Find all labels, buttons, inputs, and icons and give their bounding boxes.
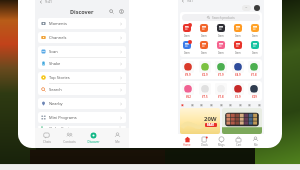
- staticText: Deals: [201, 143, 208, 147]
- button[interactable]: Top Stories: [38, 72, 126, 83]
- button[interactable]: ···: [242, 5, 251, 11]
- staticText: ▣: [181, 103, 184, 106]
- staticText: 9:41: [45, 0, 52, 4]
- button[interactable]: Moments: [38, 18, 126, 29]
- staticText: Item: [235, 51, 241, 55]
- button[interactable]: Discover: [81, 128, 105, 148]
- button[interactable]: Cart: [230, 134, 247, 148]
- button[interactable]: Item: [216, 23, 226, 38]
- staticText: ¥1.8: [251, 73, 257, 77]
- button[interactable]: Item: [216, 40, 226, 55]
- button[interactable]: ¥3.9: [232, 83, 244, 99]
- button[interactable]: Order Center: [38, 126, 126, 128]
- staticText: 20W: [204, 115, 217, 123]
- button[interactable]: [222, 108, 262, 134]
- staticText: Discover: [87, 140, 100, 144]
- button[interactable]: Search: [38, 84, 126, 95]
- staticText: ▣: [210, 103, 213, 106]
- staticText: ¥1.8: [218, 95, 224, 99]
- staticText: Cart: [236, 143, 242, 147]
- staticText: ▣: [229, 103, 232, 106]
- staticText: ▣: [239, 103, 242, 106]
- staticText: Item: [184, 34, 190, 38]
- button[interactable]: Item: [233, 40, 243, 55]
- button[interactable]: Item: [250, 40, 260, 55]
- staticText: Me: [254, 143, 258, 147]
- button[interactable]: ¥1.9: [215, 61, 227, 77]
- staticText: Contacts: [63, 140, 76, 144]
- staticText: Mini Programs: [49, 115, 77, 120]
- staticText: Chats: [43, 140, 51, 144]
- button[interactable]: Nearby: [38, 98, 126, 109]
- button[interactable]: Item: [199, 40, 209, 55]
- staticText: Msgs: [218, 143, 225, 147]
- button[interactable]: Chats: [35, 128, 58, 148]
- button[interactable]: Me: [105, 128, 129, 148]
- button[interactable]: Item: [199, 23, 209, 38]
- staticText: ▣: [191, 103, 194, 106]
- staticText: Item: [252, 34, 258, 38]
- staticText: Item: [218, 51, 224, 55]
- button[interactable]: Item: [182, 40, 192, 55]
- staticText: ¥9.9: [185, 73, 191, 77]
- button[interactable]: ¥7.5: [199, 83, 211, 99]
- button[interactable]: Deals: [196, 134, 213, 148]
- button[interactable]: ¥4.9: [232, 61, 244, 77]
- staticText: Order Center: [49, 126, 74, 128]
- button[interactable]: Search: [108, 8, 115, 15]
- staticText: Nearby: [49, 101, 63, 106]
- button[interactable]: Item: [182, 23, 192, 38]
- button[interactable]: Item: [250, 23, 260, 38]
- button[interactable]: Account: [254, 5, 260, 11]
- staticText: ¥1.9: [218, 73, 224, 77]
- staticText: Search: [49, 87, 62, 92]
- button[interactable]: ¥62: [182, 83, 194, 99]
- staticText: Item: [201, 34, 207, 38]
- staticText: ▣: [248, 103, 251, 106]
- button[interactable]: More options: [118, 8, 125, 15]
- button[interactable]: 20W: [180, 108, 220, 134]
- staticText: Scan: [49, 49, 58, 54]
- button[interactable]: Me: [247, 134, 264, 148]
- staticText: ¥3.9: [235, 95, 241, 99]
- staticText: Item: [252, 51, 258, 55]
- button[interactable]: Home: [178, 134, 196, 148]
- button[interactable]: Search products: [182, 14, 260, 21]
- staticText: FAST: [207, 123, 215, 127]
- button[interactable]: ¥1.8: [215, 83, 227, 99]
- staticText: Channels: [49, 35, 67, 40]
- staticText: ▣: [258, 103, 261, 106]
- button[interactable]: ¥9.9: [182, 61, 194, 77]
- staticText: Moments: [49, 21, 67, 26]
- button[interactable]: Contacts: [58, 128, 81, 148]
- button[interactable]: Msgs: [213, 134, 230, 148]
- button[interactable]: ¥29: [248, 83, 260, 99]
- button[interactable]: Shake: [38, 58, 126, 69]
- staticText: Item: [218, 34, 224, 38]
- staticText: Home: [183, 143, 191, 147]
- staticText: ¥4.9: [235, 73, 241, 77]
- staticText: Me: [115, 140, 120, 144]
- staticText: Item: [184, 51, 190, 55]
- button[interactable]: Scan: [38, 46, 126, 57]
- staticText: ¥29: [252, 95, 257, 99]
- button[interactable]: Item: [233, 23, 243, 38]
- staticText: Item: [235, 34, 241, 38]
- staticText: ▣: [220, 103, 223, 106]
- staticText: ▣: [200, 103, 203, 106]
- staticText: ¥2.9: [202, 73, 208, 77]
- button[interactable]: ¥1.8: [248, 61, 260, 77]
- staticText: Item: [201, 51, 207, 55]
- staticText: ···: [245, 6, 248, 10]
- button[interactable]: Mini Programs: [38, 112, 126, 123]
- button[interactable]: ¥2.9: [199, 61, 211, 77]
- button[interactable]: Channels: [38, 32, 126, 43]
- staticText: Search products: [212, 16, 235, 20]
- staticText: ¥7.5: [202, 95, 208, 99]
- staticText: Shake: [49, 61, 61, 66]
- staticText: ¥62: [186, 95, 191, 99]
- staticText: 9:41: [187, 0, 193, 3]
- staticText: Top Stories: [49, 75, 70, 80]
- staticText: Discover: [70, 8, 94, 15]
